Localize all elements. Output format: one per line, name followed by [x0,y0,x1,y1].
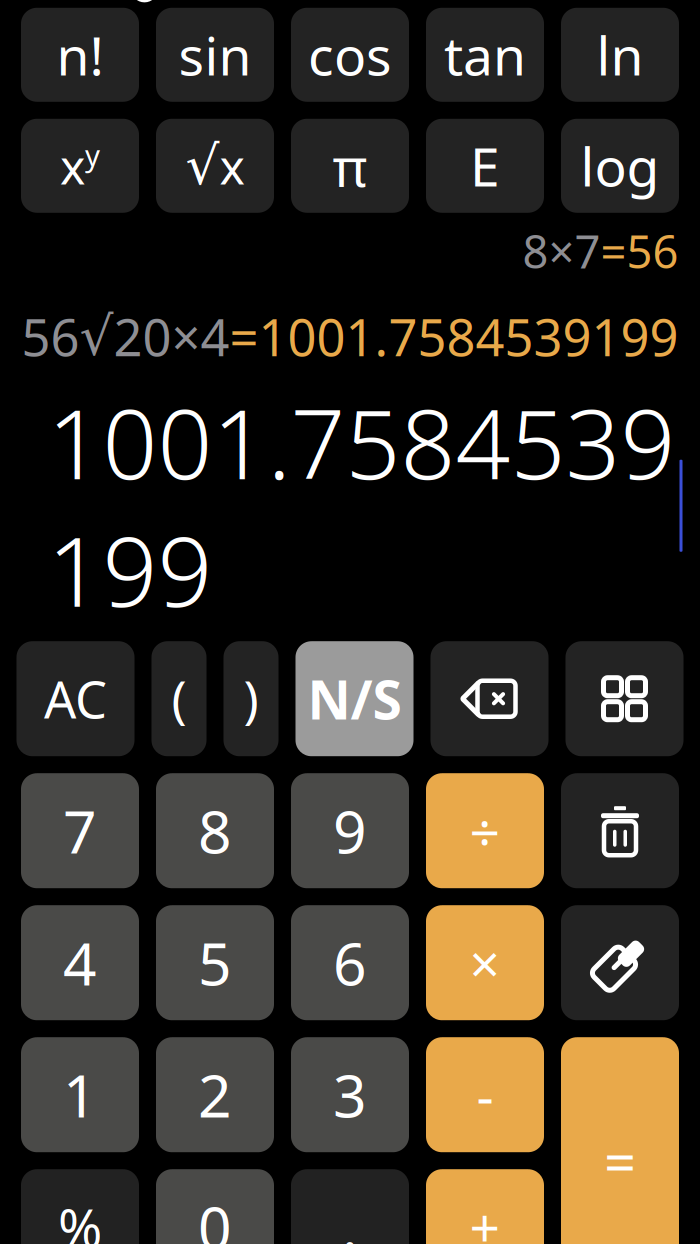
staticText: 8×7 [522,221,600,281]
staticText: n! [56,19,103,90]
staticText: 2 [198,1056,232,1134]
staticText: =1001.7584539199 [229,303,678,370]
button[interactable]: Backspace [430,641,548,756]
staticText: √ [185,135,219,196]
button[interactable]: % [21,1169,139,1244]
staticText: 8 [198,792,232,870]
button[interactable]: x [21,119,139,213]
staticText: √ [79,306,113,367]
button[interactable]: 2 [156,1037,274,1152]
staticText: E [470,130,500,201]
staticText: 9 [333,792,367,870]
button[interactable]: 8 [156,773,274,888]
button[interactable]: . [291,1169,409,1244]
staticText: 1 [63,1056,97,1134]
button[interactable]: tan [426,8,544,102]
staticText: N/S [307,663,401,734]
staticText: 6 [333,924,367,1002]
button[interactable]: 0 [156,1169,274,1244]
button[interactable]: √ [156,119,274,213]
button[interactable]: E [426,119,544,213]
staticText: log [580,130,659,201]
staticText: 1001.7584539199 [47,378,675,633]
staticText: tan [444,19,526,90]
staticText: + [469,1191,500,1244]
staticText: ) [243,665,258,732]
button[interactable]: cos [291,8,409,102]
button[interactable]: × [426,905,544,1020]
button[interactable]: 3 [291,1037,409,1152]
button[interactable]: Appearance [561,905,679,1020]
button[interactable]: 4 [21,905,139,1020]
button[interactable]: 1 [21,1037,139,1152]
staticText: 7 [63,792,97,870]
staticText: × [469,927,500,998]
staticText: 56 [21,303,79,370]
staticText: ÷ [469,795,500,866]
staticText: 20×4 [113,303,229,370]
button[interactable]: AC [16,641,134,756]
staticText: - [476,1059,493,1130]
button[interactable]: ( [151,641,206,756]
button[interactable]: = [561,1037,679,1244]
staticText: y [85,135,100,174]
staticText: π [332,130,367,201]
staticText: 0 [198,1188,232,1244]
button[interactable]: - [426,1037,544,1152]
button[interactable]: log [561,119,679,213]
staticText: x [219,134,244,198]
staticText: ln [596,19,643,90]
button[interactable]: π [291,119,409,213]
button[interactable]: ln [561,8,679,102]
staticText: ( [171,665,186,732]
button[interactable]: Clear history [561,773,679,888]
button[interactable]: + [426,1169,544,1244]
button[interactable]: 7 [21,773,139,888]
staticText: AC [44,665,107,732]
staticText: cos [308,19,392,90]
button[interactable]: 6 [291,905,409,1020]
staticText: x [60,134,85,198]
button[interactable]: 5 [156,905,274,1020]
staticText: 5 [198,924,232,1002]
button[interactable]: n! [21,8,139,102]
staticText: sin [178,19,251,90]
button[interactable]: 9 [291,773,409,888]
button[interactable]: ÷ [426,773,544,888]
button[interactable]: N/S [295,641,413,756]
staticText: 4 [63,924,97,1002]
button[interactable]: More functions [565,641,683,756]
staticText: =56 [600,221,678,281]
button[interactable]: ) [223,641,278,756]
staticText: = [604,1123,636,1198]
button[interactable]: sin [156,8,274,102]
staticText: % [58,1191,102,1244]
staticText: . [342,1188,358,1244]
staticText: 3 [333,1056,367,1134]
